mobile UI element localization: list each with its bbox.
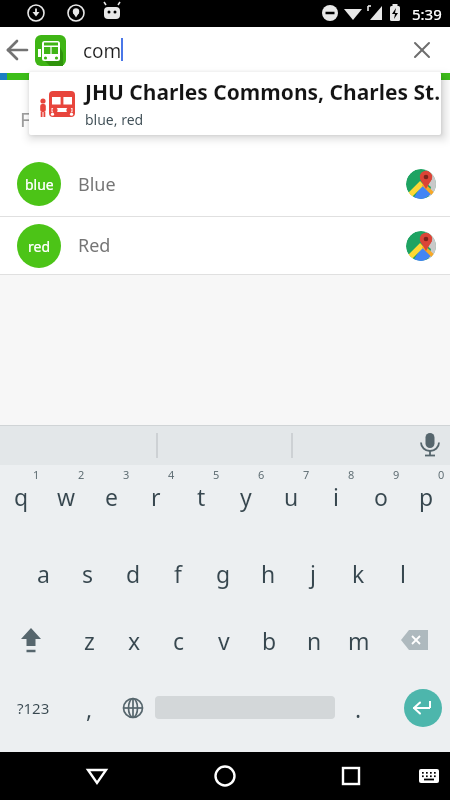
staticText: ?123 <box>17 698 50 718</box>
button[interactable] <box>150 752 300 800</box>
staticText: d <box>126 558 141 589</box>
staticText: j <box>310 558 316 589</box>
staticText: z <box>84 625 95 656</box>
staticText: b <box>262 625 277 656</box>
staticText: blue, red <box>85 110 144 129</box>
staticText: t <box>197 481 206 512</box>
staticText: v <box>218 625 230 656</box>
staticText: x <box>128 625 141 656</box>
staticText: 5 <box>213 467 220 482</box>
staticText: h <box>261 558 276 589</box>
staticText: e <box>105 481 118 512</box>
staticText: 4 <box>168 467 175 482</box>
button[interactable] <box>408 38 436 62</box>
staticText: . <box>355 693 362 724</box>
staticText: i <box>333 481 339 512</box>
staticText: p <box>419 481 434 512</box>
staticText: F <box>20 106 31 133</box>
button[interactable]: blue <box>0 152 450 216</box>
staticText: JHU Charles Commons, Charles St. <box>85 78 441 107</box>
staticText: y <box>240 481 252 512</box>
staticText: red <box>28 237 51 256</box>
staticText: l <box>400 558 406 589</box>
staticText: r <box>151 481 161 512</box>
staticText: s <box>82 558 94 589</box>
staticText: 0 <box>438 467 445 482</box>
button[interactable]: red <box>0 217 450 274</box>
staticText: 3 <box>123 467 130 482</box>
staticText: 1 <box>33 467 40 482</box>
staticText: 6 <box>258 467 265 482</box>
staticText: 7 <box>303 467 310 482</box>
staticText: , <box>86 693 93 724</box>
staticText: u <box>284 481 299 512</box>
staticText: q <box>14 481 29 512</box>
staticText: o <box>374 481 388 512</box>
staticText: 8 <box>348 467 355 482</box>
staticText: a <box>37 558 50 589</box>
staticText: f <box>174 558 182 589</box>
staticText: m <box>348 625 370 656</box>
staticText: c <box>173 625 185 656</box>
button[interactable] <box>0 752 150 800</box>
button[interactable] <box>0 38 34 62</box>
staticText: g <box>216 558 231 589</box>
button[interactable] <box>300 752 450 800</box>
staticText: w <box>57 481 76 512</box>
staticText: 2 <box>78 467 85 482</box>
staticText: Blue <box>78 172 116 197</box>
staticText: n <box>307 625 322 656</box>
staticText: blue <box>25 175 54 194</box>
staticText: 9 <box>393 467 400 482</box>
staticText: k <box>352 558 365 589</box>
staticText: Red <box>78 233 111 258</box>
staticText: 5:39 <box>412 4 442 24</box>
staticText: com <box>83 38 122 64</box>
button[interactable]: JHU Charles Commons, Charles St. <box>29 72 441 135</box>
